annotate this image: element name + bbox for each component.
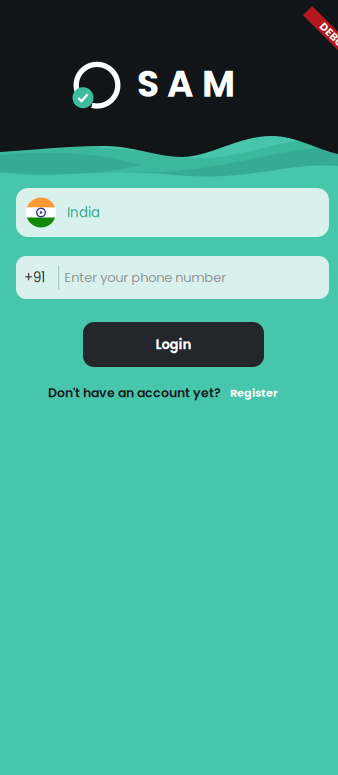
button[interactable]: +91 (16, 256, 329, 299)
staticText: Enter your phone number (64, 268, 226, 287)
staticText: DEBUG (316, 30, 338, 45)
button[interactable]: Login (83, 322, 264, 367)
staticText: Register (230, 385, 278, 401)
staticText: India (67, 203, 100, 222)
staticText: Don't have an account yet? (48, 384, 221, 401)
staticText: S A M (137, 59, 235, 109)
button[interactable]: Register (230, 385, 278, 401)
staticText: +91 (24, 268, 45, 287)
button[interactable]: India (16, 188, 329, 237)
staticText: Login (155, 335, 191, 354)
